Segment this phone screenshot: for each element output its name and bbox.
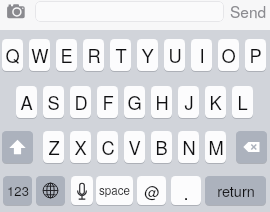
button[interactable]: space	[96, 176, 133, 205]
staticText: K	[209, 89, 222, 115]
staticText: G	[127, 89, 142, 115]
button[interactable]: H	[151, 86, 172, 118]
button[interactable]: .	[171, 176, 201, 205]
button[interactable]: @	[137, 176, 166, 205]
button[interactable]: G	[124, 86, 145, 118]
staticText: S	[47, 89, 60, 115]
staticText: C	[101, 134, 115, 160]
button[interactable]: X	[70, 131, 91, 163]
button[interactable]: Backspace	[236, 131, 267, 163]
button[interactable]: return	[205, 176, 266, 205]
button[interactable]: O	[218, 39, 239, 71]
staticText: M	[208, 134, 224, 160]
staticText: return	[217, 180, 255, 201]
button[interactable]: Shift	[2, 131, 33, 163]
button[interactable]: F	[97, 86, 118, 118]
staticText: Send	[230, 0, 267, 22]
staticText: 123	[7, 181, 29, 200]
staticText: Z	[48, 134, 60, 160]
button[interactable]: N	[178, 131, 199, 163]
staticText: J	[184, 89, 194, 115]
staticText: space	[99, 182, 130, 199]
button[interactable]: I	[191, 39, 212, 71]
button[interactable]: R	[83, 39, 104, 71]
staticText: I	[199, 42, 205, 68]
staticText: X	[74, 134, 87, 160]
button[interactable]: K	[205, 86, 226, 118]
staticText: O	[221, 42, 236, 68]
button[interactable]: M	[205, 131, 226, 163]
button[interactable]: 123	[3, 176, 32, 205]
button[interactable]: D	[70, 86, 91, 118]
button[interactable]: A	[16, 86, 37, 118]
staticText: P	[249, 42, 262, 68]
staticText: A	[20, 89, 33, 115]
staticText: L	[237, 89, 248, 115]
button[interactable]: P	[245, 39, 266, 71]
button[interactable]: S	[43, 86, 64, 118]
button[interactable]: Y	[137, 39, 158, 71]
staticText: D	[74, 89, 88, 115]
button[interactable]: Take photo	[2, 1, 28, 23]
staticText: F	[102, 89, 114, 115]
button[interactable]: Q	[2, 39, 23, 71]
button[interactable]	[35, 1, 224, 22]
staticText: Y	[141, 42, 154, 68]
staticText: H	[155, 89, 169, 115]
button[interactable]: Z	[43, 131, 64, 163]
button[interactable]: U	[164, 39, 185, 71]
button[interactable]: E	[56, 39, 77, 71]
staticText: U	[168, 42, 182, 68]
staticText: R	[87, 42, 101, 68]
staticText: T	[115, 42, 127, 68]
staticText: E	[60, 42, 73, 68]
button[interactable]: Dictation	[71, 176, 93, 205]
staticText: W	[31, 42, 49, 68]
staticText: V	[128, 134, 141, 160]
button[interactable]: L	[232, 86, 253, 118]
button[interactable]: C	[97, 131, 118, 163]
button[interactable]: W	[29, 39, 50, 71]
staticText: N	[182, 134, 196, 160]
staticText: .	[183, 179, 189, 205]
staticText: B	[155, 134, 168, 160]
button[interactable]: J	[178, 86, 199, 118]
button[interactable]: Next keyboard	[36, 176, 65, 205]
button[interactable]: V	[124, 131, 145, 163]
staticText: Q	[5, 42, 20, 68]
button[interactable]: Send	[226, 0, 270, 22]
staticText: @	[144, 180, 160, 202]
button[interactable]: B	[151, 131, 172, 163]
button[interactable]: T	[110, 39, 131, 71]
